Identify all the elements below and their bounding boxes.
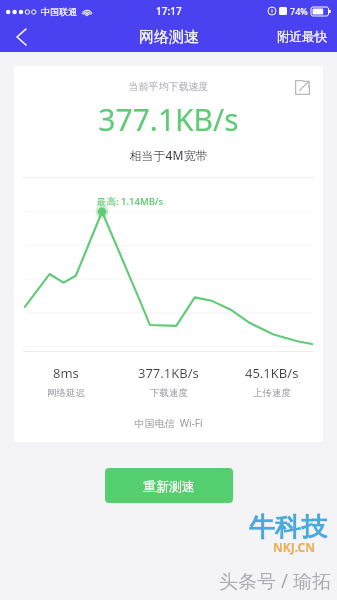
staticText: 上传速度 (253, 387, 291, 399)
staticText: 最高: 1.14MB/s (97, 195, 164, 208)
staticText: 下载速度 (150, 387, 188, 399)
staticText: NKJ.CN (273, 539, 315, 555)
staticText: 377.1KB/s (14, 99, 323, 140)
staticText: 网络延迟 (47, 387, 85, 399)
button[interactable]: Share (289, 74, 315, 100)
staticText: 相当于4M宽带 (14, 147, 323, 163)
staticText: 中国电信 Wi-Fi (14, 416, 323, 430)
button[interactable]: 附近最快 (267, 22, 337, 52)
staticText: 当前平均下载速度 (14, 80, 323, 93)
staticText: 377.1KB/s (138, 364, 199, 382)
staticText: 附近最快 (277, 29, 327, 45)
staticText: 17:17 (156, 4, 182, 18)
button[interactable]: 重新测速 (105, 468, 233, 503)
button[interactable]: Back (0, 22, 42, 52)
staticText: 74% (290, 5, 308, 17)
staticText: 头条号 / 瑜拓 (219, 568, 331, 594)
staticText: 网络测速 (139, 28, 199, 47)
staticText: 牛科技 (249, 511, 327, 544)
staticText: 45.1KB/s (245, 364, 299, 382)
staticText: 重新测速 (143, 478, 195, 494)
staticText: 8ms (53, 364, 79, 382)
staticText: 中国联通 (41, 6, 77, 17)
